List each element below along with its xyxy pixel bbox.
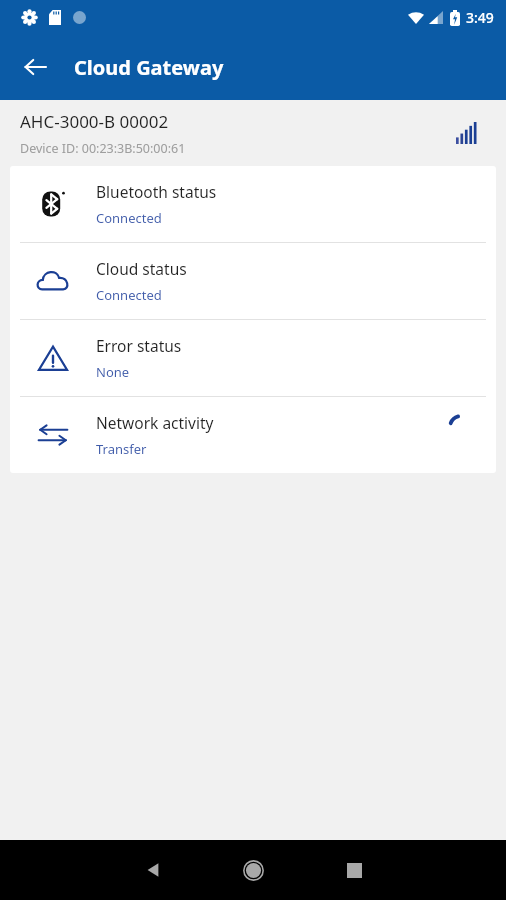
staticText: 3:49: [466, 8, 494, 27]
button[interactable]: Home: [203, 840, 304, 900]
staticText: Cloud status: [96, 258, 187, 279]
staticText: Cloud Gateway: [74, 54, 224, 81]
button[interactable]: Network activity: [10, 397, 496, 473]
button[interactable]: Back: [10, 42, 60, 92]
staticText: Connected: [96, 286, 162, 304]
staticText: Connected: [96, 209, 162, 227]
button[interactable]: Back: [102, 840, 203, 900]
staticText: Device ID: 00:23:3B:50:00:61: [20, 140, 186, 157]
staticText: None: [96, 363, 130, 381]
staticText: Network activity: [96, 412, 214, 433]
button[interactable]: Error status: [10, 320, 496, 396]
staticText: AHC-3000-B 00002: [20, 110, 169, 133]
staticText: Transfer: [96, 440, 147, 458]
button[interactable]: Bluetooth status: [10, 166, 496, 242]
staticText: Error status: [96, 335, 182, 356]
button[interactable]: Recent apps: [304, 840, 405, 900]
staticText: Bluetooth status: [96, 181, 217, 202]
button[interactable]: Cloud status: [10, 243, 496, 319]
